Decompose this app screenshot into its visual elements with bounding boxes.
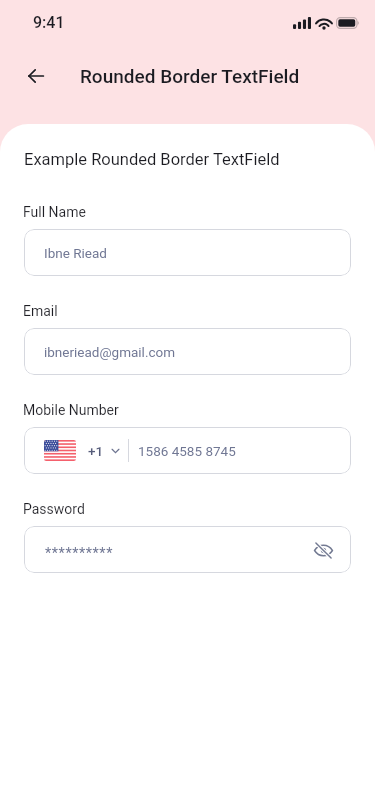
staticText: ********** [45, 545, 306, 562]
button[interactable]: ibneriead@gmail.com [24, 328, 351, 375]
button[interactable]: Show password [306, 533, 340, 567]
staticText: +1 [88, 443, 104, 459]
button[interactable]: ********** [24, 526, 351, 573]
staticText: Example Rounded Border TextField [24, 150, 280, 169]
staticText: Mobile Number [23, 402, 119, 418]
staticText: Full Name [23, 204, 86, 220]
button[interactable]: +1 [36, 427, 136, 474]
staticText: ibneriead@gmail.com [44, 344, 176, 360]
staticText: Rounded Border TextField [80, 65, 300, 87]
staticText: 9:41 [33, 13, 65, 32]
staticText: Password [23, 501, 85, 517]
staticText: Email [23, 303, 58, 319]
staticText: 1586 4585 8745 [138, 443, 236, 459]
button[interactable]: Back [17, 57, 55, 95]
button[interactable]: +1 [24, 427, 351, 474]
staticText: Ibne Riead [44, 245, 107, 261]
button[interactable]: Ibne Riead [24, 229, 351, 276]
